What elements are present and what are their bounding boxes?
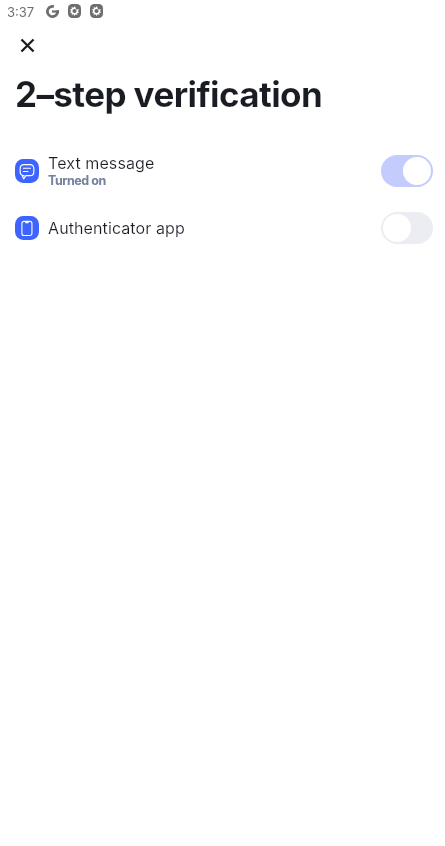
button[interactable]: Text message toggle: [381, 155, 433, 187]
staticText: Text message: [48, 153, 155, 172]
staticText: Turned on: [48, 173, 106, 188]
button[interactable]: Text message: [0, 147, 445, 194]
button[interactable]: Authenticator app toggle: [381, 212, 433, 244]
staticText: 2–step verification: [15, 73, 323, 115]
button[interactable]: Close: [10, 28, 44, 62]
staticText: Authenticator app: [48, 218, 185, 237]
button[interactable]: Authenticator app: [0, 204, 445, 251]
staticText: 3:37: [7, 4, 35, 20]
